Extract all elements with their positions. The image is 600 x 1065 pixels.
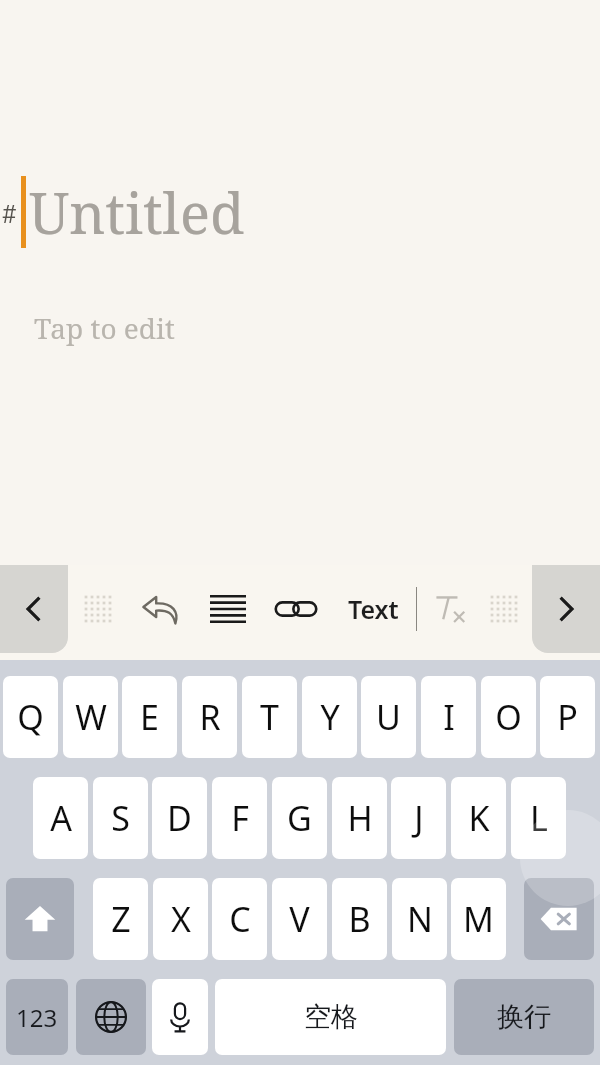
staticText: K — [468, 795, 490, 841]
staticText: A — [50, 795, 72, 841]
button[interactable]: Return — [454, 979, 594, 1055]
staticText: L — [530, 795, 548, 841]
button[interactable]: I — [421, 676, 476, 758]
staticText: X — [171, 896, 191, 942]
staticText: Y — [320, 694, 340, 740]
staticText: E — [140, 694, 159, 740]
staticText: Z — [111, 896, 131, 942]
staticText: O — [495, 694, 522, 740]
button[interactable]: E — [122, 676, 177, 758]
staticText: J — [414, 795, 424, 841]
staticText: I — [443, 694, 455, 740]
button[interactable]: Y — [302, 676, 357, 758]
button[interactable]: Tap to edit — [30, 305, 179, 351]
button[interactable]: O — [481, 676, 536, 758]
staticText: D — [167, 795, 192, 841]
button[interactable]: L — [511, 777, 566, 859]
button[interactable]: C — [212, 878, 267, 960]
staticText: # — [2, 195, 17, 230]
staticText: Text — [348, 592, 399, 626]
button[interactable]: Q — [3, 676, 58, 758]
staticText: 空格 — [304, 1000, 358, 1034]
button[interactable]: K — [451, 777, 506, 859]
button[interactable]: X — [153, 878, 208, 960]
staticText: V — [289, 896, 310, 942]
staticText: H — [347, 795, 373, 841]
staticText: 123 — [16, 1001, 58, 1034]
button[interactable]: T — [242, 676, 297, 758]
button[interactable]: Grid — [74, 565, 122, 653]
button[interactable]: F — [212, 777, 267, 859]
staticText: C — [229, 896, 251, 942]
button[interactable]: Numbers — [6, 979, 68, 1055]
staticText: R — [199, 694, 221, 740]
staticText: B — [348, 896, 371, 942]
button[interactable]: H — [332, 777, 387, 859]
button[interactable]: Grid — [480, 565, 528, 653]
button[interactable]: Z — [93, 878, 148, 960]
button[interactable]: G — [272, 777, 327, 859]
staticText: 换行 — [497, 1000, 551, 1034]
button[interactable]: J — [391, 777, 446, 859]
button[interactable]: U — [361, 676, 416, 758]
staticText: S — [111, 795, 130, 841]
staticText: Q — [17, 694, 44, 740]
button[interactable]: List — [198, 565, 258, 653]
button[interactable]: Shift — [6, 878, 74, 960]
staticText: U — [376, 694, 401, 740]
button[interactable]: V — [272, 878, 327, 960]
button[interactable]: Clear formatting — [424, 565, 476, 653]
button[interactable]: A — [33, 777, 88, 859]
button[interactable]: # — [0, 172, 600, 252]
staticText: W — [75, 694, 107, 740]
button[interactable]: Text — [334, 565, 412, 653]
button[interactable]: Undo — [130, 565, 192, 653]
staticText: M — [463, 896, 494, 942]
staticText: F — [231, 795, 249, 841]
staticText: Tap to edit — [34, 309, 175, 347]
button[interactable]: Next — [532, 565, 600, 653]
button[interactable]: Previous — [0, 565, 68, 653]
button[interactable]: Change keyboard — [76, 979, 146, 1055]
button[interactable]: P — [540, 676, 595, 758]
staticText: T — [260, 694, 279, 740]
staticText: G — [287, 795, 312, 841]
staticText: N — [407, 896, 433, 942]
button[interactable]: N — [392, 878, 447, 960]
button[interactable]: B — [332, 878, 387, 960]
button[interactable]: D — [152, 777, 207, 859]
button[interactable]: Backspace — [524, 878, 594, 960]
button[interactable]: R — [182, 676, 237, 758]
staticText: Untitled — [29, 174, 245, 250]
button[interactable]: W — [63, 676, 118, 758]
button[interactable]: S — [93, 777, 148, 859]
button[interactable]: Space — [215, 979, 446, 1055]
button[interactable]: Voice input — [152, 979, 208, 1055]
button[interactable]: Link — [266, 565, 326, 653]
button[interactable]: M — [451, 878, 506, 960]
staticText: P — [557, 694, 578, 740]
